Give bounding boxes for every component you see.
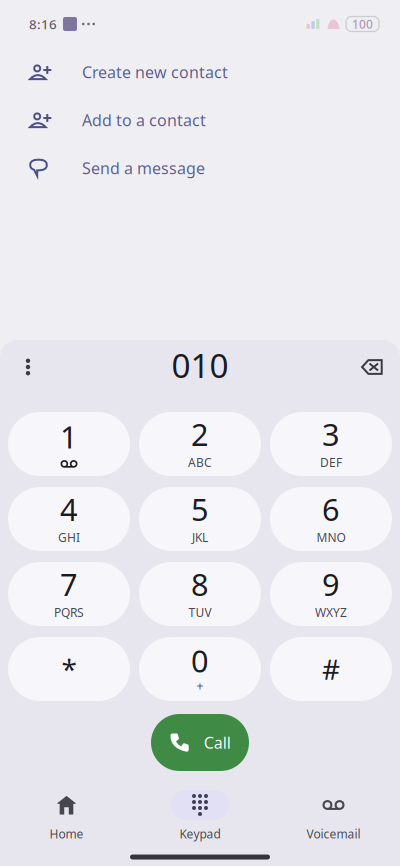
button[interactable]: 3: [270, 412, 392, 476]
button[interactable]: Delete: [350, 345, 394, 389]
staticText: #: [322, 650, 340, 688]
button[interactable]: Add to a contact: [0, 96, 400, 144]
staticText: 9: [322, 564, 340, 604]
staticText: 7: [60, 564, 78, 604]
staticText: Keypad: [179, 826, 220, 842]
button[interactable]: 0: [139, 637, 261, 701]
button[interactable]: Keypad: [145, 790, 255, 846]
staticText: GHI: [58, 529, 80, 545]
staticText: 6: [322, 489, 340, 529]
staticText: JKL: [192, 529, 208, 545]
button[interactable]: 8: [139, 562, 261, 626]
staticText: 100: [352, 16, 373, 32]
staticText: DEF: [320, 454, 342, 470]
button[interactable]: More options: [6, 345, 50, 389]
staticText: 3: [322, 414, 340, 454]
button[interactable]: Home: [11, 790, 121, 846]
staticText: Call: [204, 732, 231, 753]
staticText: 8:16: [29, 15, 57, 33]
staticText: 0: [191, 640, 209, 681]
staticText: Create new contact: [82, 61, 228, 83]
staticText: WXYZ: [315, 604, 347, 620]
button[interactable]: 2: [139, 412, 261, 476]
staticText: 1: [60, 416, 78, 457]
staticText: PQRS: [54, 604, 84, 620]
button[interactable]: Voicemail: [278, 790, 388, 846]
button[interactable]: Create new contact: [0, 48, 400, 96]
staticText: Voicemail: [306, 826, 360, 842]
staticText: ABC: [188, 454, 212, 470]
staticText: 5: [191, 489, 209, 529]
staticText: Add to a contact: [82, 109, 206, 131]
button[interactable]: 1: [8, 412, 130, 476]
button[interactable]: Call: [151, 714, 249, 771]
button[interactable]: 9: [270, 562, 392, 626]
staticText: 010: [171, 343, 228, 387]
button[interactable]: Send a message: [0, 144, 400, 192]
button[interactable]: 7: [8, 562, 130, 626]
staticText: *: [61, 650, 76, 688]
staticText: TUV: [188, 604, 211, 620]
staticText: +: [196, 678, 203, 694]
button[interactable]: 6: [270, 487, 392, 551]
button[interactable]: 4: [8, 487, 130, 551]
button[interactable]: 5: [139, 487, 261, 551]
button[interactable]: *: [8, 637, 130, 701]
staticText: Send a message: [82, 157, 205, 179]
staticText: 4: [60, 489, 78, 529]
staticText: MNO: [316, 529, 345, 545]
button[interactable]: #: [270, 637, 392, 701]
staticText: 2: [191, 414, 209, 454]
staticText: 8: [191, 564, 209, 604]
staticText: Home: [49, 826, 83, 842]
